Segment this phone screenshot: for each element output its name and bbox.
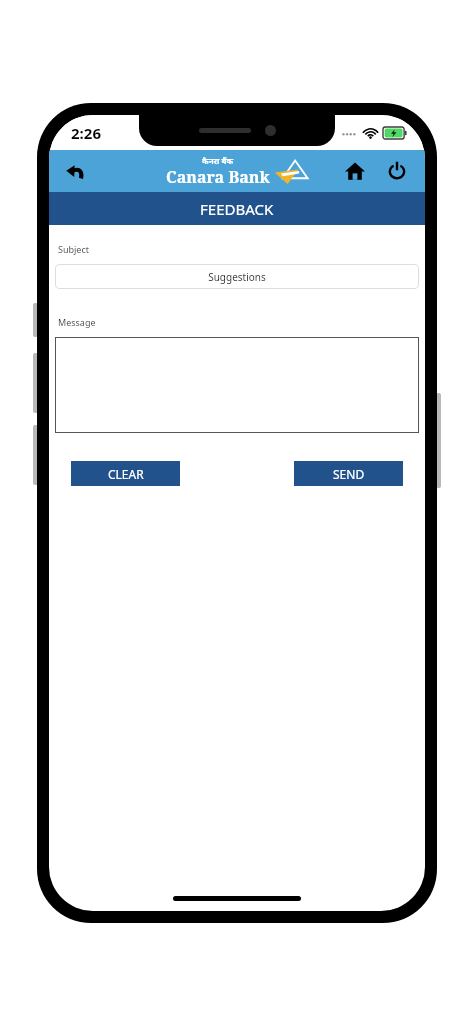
staticText: कैनरा बैंक — [202, 155, 234, 166]
staticText: Canara Bank — [166, 166, 270, 188]
button[interactable]: Home — [337, 153, 373, 189]
button[interactable]: SEND — [294, 461, 403, 486]
staticText: 2:26 — [71, 123, 101, 143]
staticText: FEEDBACK — [200, 199, 274, 219]
button[interactable]: Logout — [379, 153, 415, 189]
button[interactable]: CLEAR — [71, 461, 180, 486]
button[interactable] — [55, 337, 419, 433]
button[interactable]: Back — [57, 153, 93, 189]
staticText: CLEAR — [108, 466, 144, 482]
staticText: SEND — [333, 466, 365, 482]
staticText: Message — [58, 316, 96, 328]
staticText: Suggestions — [208, 270, 266, 284]
staticText: Subject — [58, 243, 90, 255]
button[interactable]: Suggestions — [55, 264, 419, 289]
